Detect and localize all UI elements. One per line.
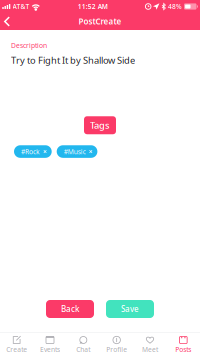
- staticText: Profile: [106, 345, 127, 354]
- button[interactable]: Chat: [67, 332, 100, 356]
- staticText: Try to Fight It by Shallow Side: [11, 54, 135, 66]
- button[interactable]: #Music: [57, 145, 97, 158]
- staticText: 11:52 AM: [78, 2, 108, 11]
- button[interactable]: Profile: [100, 332, 133, 356]
- staticText: Save: [121, 304, 139, 314]
- button[interactable]: Tags: [84, 116, 116, 134]
- button[interactable]: Create: [0, 332, 33, 356]
- staticText: #Music: [64, 147, 86, 156]
- staticText: PostCreate: [78, 16, 121, 27]
- staticText: Chat: [76, 345, 90, 354]
- staticText: Back: [61, 304, 79, 314]
- button[interactable]: Meet: [133, 332, 167, 356]
- button[interactable]: Back: [0, 13, 14, 30]
- button[interactable]: Events: [33, 332, 67, 356]
- button[interactable]: Save: [106, 300, 154, 318]
- staticText: Description: [11, 41, 47, 50]
- staticText: AT&T: [13, 2, 30, 11]
- button[interactable]: Back: [46, 300, 94, 318]
- staticText: Tags: [90, 119, 110, 131]
- staticText: Create: [6, 345, 27, 354]
- staticText: Posts: [175, 345, 191, 354]
- staticText: #Rock: [21, 147, 40, 156]
- button[interactable]: #Rock: [14, 145, 52, 158]
- staticText: Events: [40, 345, 60, 354]
- button[interactable]: Posts: [167, 332, 200, 356]
- staticText: Meet: [142, 345, 158, 354]
- staticText: 48%: [168, 2, 182, 11]
